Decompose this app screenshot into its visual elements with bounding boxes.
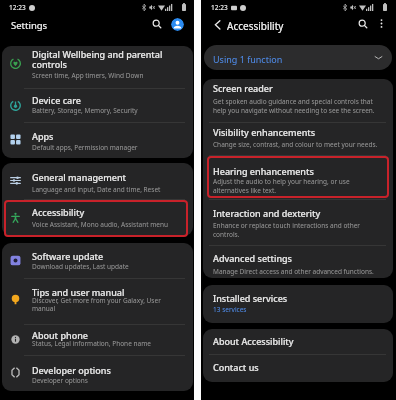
staticText: Accessibility	[227, 19, 284, 33]
staticText: Adjust the audio to help your hearing, o…	[213, 177, 385, 195]
button[interactable]	[0, 278, 194, 324]
staticText: Screen reader	[213, 82, 391, 94]
staticText: Enhance or replace touch interactions an…	[213, 221, 385, 239]
button[interactable]	[0, 88, 194, 123]
button[interactable]	[201, 285, 396, 323]
staticText: Screen time, App timers, Wind Down	[32, 71, 184, 80]
staticText: Developer options	[32, 364, 166, 376]
staticText: Contact us	[213, 361, 391, 373]
staticText: Change size, contrast, and colour to mee…	[213, 140, 385, 149]
staticText: Installed services	[213, 292, 391, 304]
staticText: Apps	[32, 130, 166, 142]
staticText: Digital Wellbeing and parental controls	[32, 48, 166, 71]
button[interactable]	[0, 46, 194, 88]
button[interactable]	[201, 155, 396, 199]
staticText: Default apps, Permission manager	[32, 143, 184, 152]
staticText: Developer options	[32, 376, 184, 385]
staticText: Device care	[32, 94, 166, 106]
button[interactable]	[0, 243, 194, 278]
staticText: Tips and user manual	[32, 286, 166, 298]
staticText: Advanced settings	[213, 252, 391, 264]
staticText: General management	[32, 171, 166, 183]
staticText: Status, Legal information, Phone name	[32, 339, 184, 348]
staticText: Battery, Storage, Memory, Security	[32, 106, 184, 115]
staticText: Accessibility	[32, 206, 166, 218]
staticText: Visibility enhancements	[213, 126, 391, 138]
button[interactable]	[0, 122, 194, 157]
staticText: Software update	[32, 250, 166, 262]
button[interactable]	[201, 199, 396, 245]
button[interactable]: Back	[209, 16, 225, 32]
staticText: Interaction and dexterity	[213, 207, 391, 219]
button[interactable]: Profile	[171, 18, 184, 31]
button[interactable]	[201, 245, 396, 278]
staticText: 13 services	[213, 305, 385, 314]
staticText: Download updates, Last update	[32, 262, 184, 271]
staticText: Hearing enhancements	[213, 165, 391, 177]
button[interactable]	[0, 324, 194, 355]
button[interactable]: Search	[148, 15, 166, 33]
staticText: Discover, Get more from your Galaxy, Use…	[32, 296, 184, 313]
staticText: Language and input, Date and time, Reset	[32, 185, 184, 194]
button[interactable]	[201, 354, 396, 381]
staticText: Voice Assistant, Mono audio, Assistant m…	[32, 220, 184, 229]
button[interactable]	[0, 163, 194, 199]
staticText: About phone	[32, 329, 166, 341]
staticText: Get spoken audio guidance and special co…	[213, 97, 385, 115]
button[interactable]: Using 1 function	[204, 45, 392, 70]
button[interactable]	[201, 122, 396, 154]
button[interactable]	[0, 199, 194, 236]
button[interactable]	[0, 355, 194, 391]
button[interactable]: Search	[354, 15, 372, 33]
staticText: 12:23	[211, 3, 228, 12]
button[interactable]	[201, 79, 396, 123]
button[interactable]: More options	[375, 17, 388, 30]
staticText: Using 1 function	[213, 53, 283, 65]
staticText: Settings	[11, 19, 48, 32]
staticText: About Accessibility	[213, 335, 391, 347]
staticText: 12:23	[9, 3, 26, 12]
button[interactable]	[201, 329, 396, 354]
staticText: Manage Direct access and other advanced …	[213, 267, 385, 276]
